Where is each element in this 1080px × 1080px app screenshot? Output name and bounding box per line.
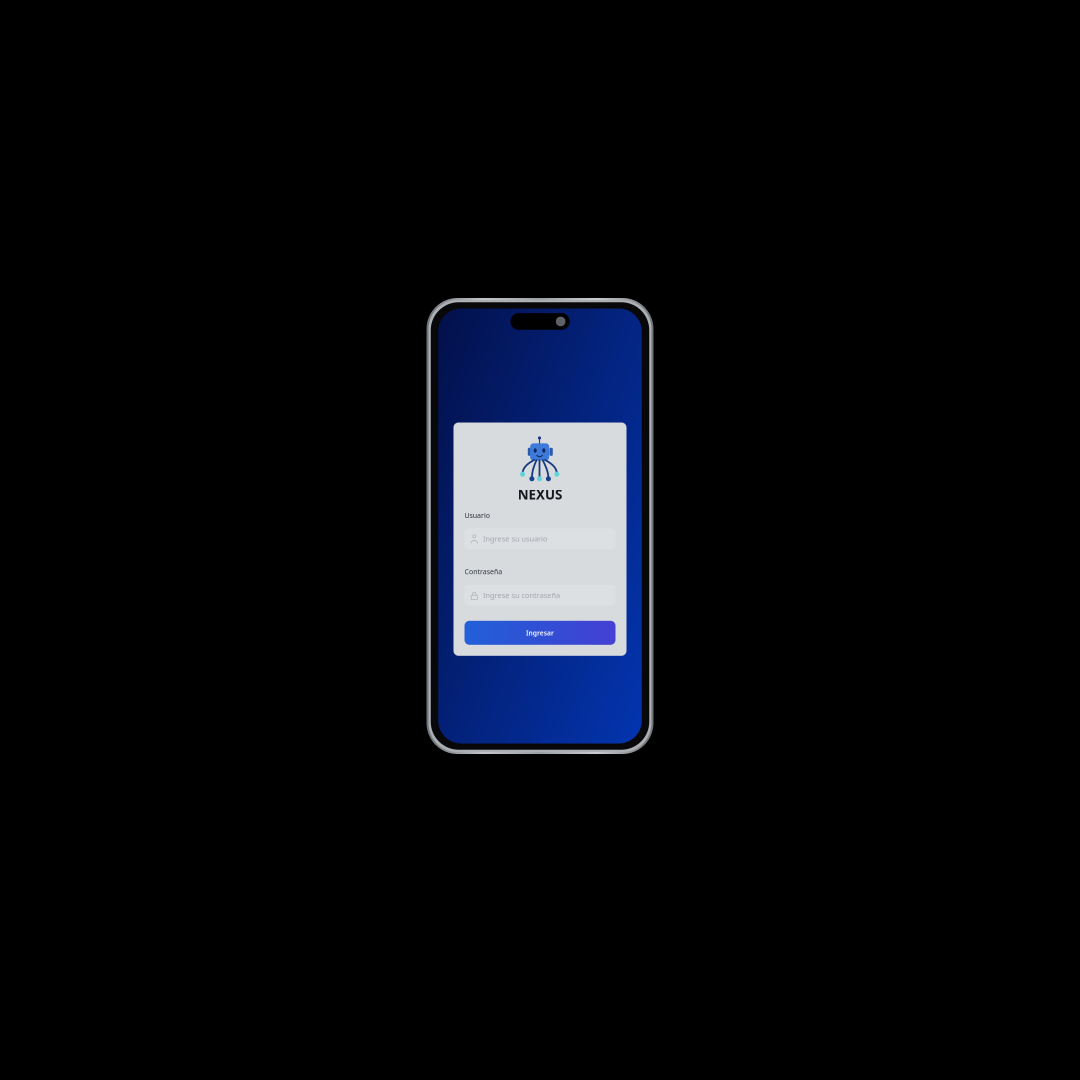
- staticText: Ingrese su usuario: [312, 557, 570, 596]
- staticText: NEXUS: [451, 364, 629, 435]
